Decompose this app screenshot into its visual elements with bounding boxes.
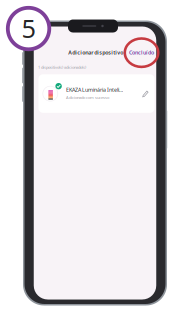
staticText: Concluído [129,49,154,56]
button[interactable]: EKAZA Luminária Inteli… [38,74,154,113]
button[interactable]: Concluído [127,46,155,59]
staticText: 5 [22,11,36,45]
staticText: Adicionado com sucesso [66,95,109,100]
staticText: EKAZA Luminária Inteli… [66,86,123,93]
staticText: 1 dispositivo(s) adicionado(s) [38,64,86,70]
staticText: Adicionar dispositivo [68,49,123,56]
